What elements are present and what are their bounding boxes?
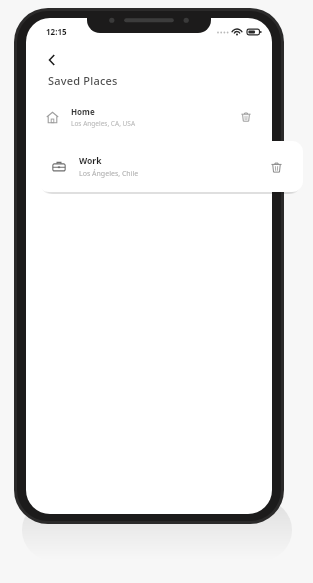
staticText: Work xyxy=(79,155,102,167)
button[interactable]: Back xyxy=(38,46,66,74)
button[interactable]: Delete Home xyxy=(236,107,256,127)
button[interactable]: Home xyxy=(26,100,272,134)
staticText: Los Angeles, CA, USA xyxy=(71,119,136,128)
staticText: Saved Places xyxy=(48,73,118,88)
staticText: 12:15 xyxy=(46,26,67,37)
button[interactable]: Work xyxy=(38,141,303,192)
staticText: Home xyxy=(71,106,95,117)
staticText: Los Ángeles, Chile xyxy=(79,169,139,179)
button[interactable]: Delete Work xyxy=(265,156,287,178)
